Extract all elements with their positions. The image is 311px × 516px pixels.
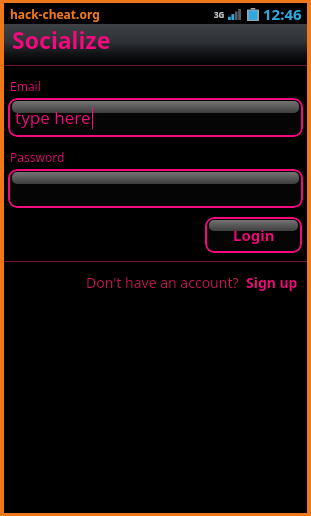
button[interactable]: Sign up	[246, 273, 298, 292]
button[interactable]: Email input	[8, 98, 303, 137]
staticText: type here	[15, 106, 91, 129]
button[interactable]: Login	[205, 217, 302, 253]
staticText: Sign up	[246, 273, 298, 292]
staticText: 3G	[214, 9, 225, 20]
staticText: Email	[10, 78, 41, 94]
staticText: hack-cheat.org	[10, 6, 100, 22]
staticText: Socialize	[12, 24, 111, 54]
button[interactable]: Password input	[8, 169, 303, 208]
staticText: Login	[233, 225, 275, 245]
staticText: Don't have an account?	[86, 273, 239, 292]
staticText: 12:46	[263, 4, 302, 24]
staticText: Password	[10, 149, 65, 165]
